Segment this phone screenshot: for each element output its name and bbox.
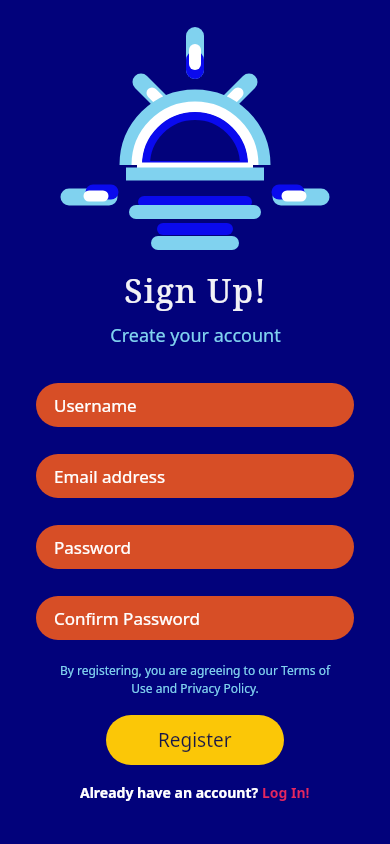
staticText: By registering, you are agreeing to our … [36,662,354,697]
staticText: Create your account [110,323,281,348]
staticText: Log In! [262,783,310,802]
button[interactable]: Register [106,715,284,765]
button[interactable]: Already have an account? [72,781,318,804]
button[interactable]: Confirm Password [36,596,354,640]
staticText: Email address [54,465,166,488]
staticText: Confirm Password [54,607,200,630]
staticText: Username [54,394,137,417]
staticText: Already have an account? [80,783,262,802]
button[interactable]: Password [36,525,354,569]
button[interactable]: Username [36,383,354,427]
staticText: Password [54,536,131,559]
staticText: Register [158,727,232,753]
staticText: Sign Up! [124,268,267,313]
button[interactable]: Email address [36,454,354,498]
